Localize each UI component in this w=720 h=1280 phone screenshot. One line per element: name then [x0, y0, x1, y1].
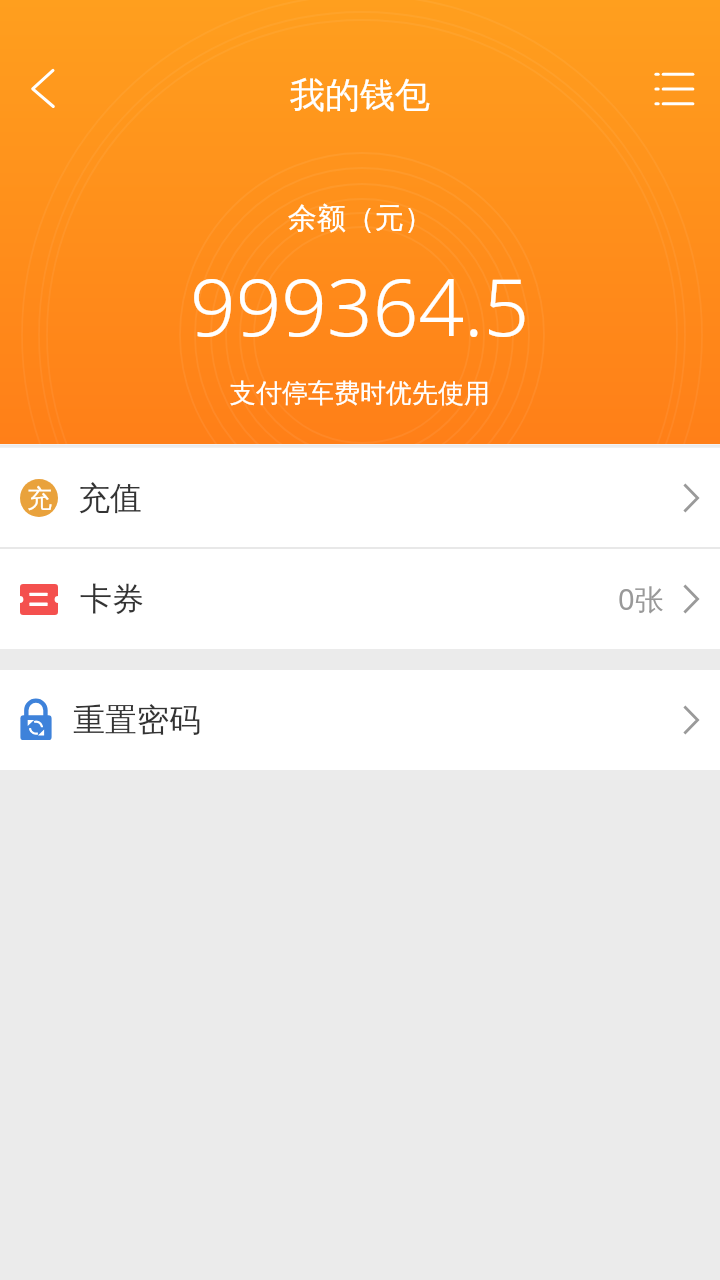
staticText: 充值	[78, 478, 142, 518]
button[interactable]: 充	[0, 448, 720, 547]
staticText: 重置密码	[73, 700, 201, 740]
staticText: 0张	[618, 579, 664, 619]
staticText: 卡券	[80, 579, 144, 619]
button[interactable]: Menu	[652, 59, 712, 119]
staticText: 充	[27, 483, 52, 514]
button[interactable]: 卡券	[0, 549, 720, 649]
staticText: 支付停车费时优先使用	[230, 377, 490, 410]
staticText: 余额（元）	[288, 200, 433, 237]
button[interactable]: 重置密码	[0, 670, 720, 770]
button[interactable]: Back	[14, 59, 74, 119]
staticText: 我的钱包	[290, 73, 430, 117]
staticText: 999364.5	[190, 250, 530, 359]
